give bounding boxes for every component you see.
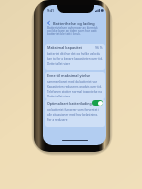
button[interactable]: Optimalisert batterilading: [45, 99, 105, 127]
staticText: og ikke bare av tiden som har gatt siden: [47, 29, 103, 32]
staticText: og batteriet fungerer som forventet i: [47, 108, 99, 111]
button[interactable]: Evne til maksimal ytelse: [45, 72, 105, 99]
staticText: Evne til maksimal ytelse: [47, 73, 91, 78]
staticText: Dette tallet viser den maksimale ladinge…: [47, 95, 71, 97]
staticText: batteriet ble tatt i bruk. Se hvordan: [47, 32, 82, 35]
button[interactable]: Optimalisert batterilading: [92, 100, 103, 106]
staticText: Kapasiteten reduseres gradvis over tid.: [47, 85, 102, 88]
staticText: kan ta for a bevare kapasiteten over tid…: [47, 57, 103, 60]
staticText: 9:41: [47, 8, 55, 13]
staticText: Dette tallet viser den maksimale ladinge…: [47, 62, 75, 65]
staticText: Maksimal kapasitet: [47, 45, 83, 50]
button[interactable]: Maksimal kapasitet: [45, 44, 105, 70]
staticText: Optimalisert batterilading: [47, 101, 92, 106]
staticText: 96 %: [95, 45, 103, 50]
staticText: For a redusere slitasjen pa batteriet: [47, 118, 78, 121]
staticText: batteriet ditt har det og hvilke valg du: [47, 52, 101, 55]
staticText: Batteriytelsen avhenger av kjemisk alder: [47, 26, 103, 29]
staticText: Batterihelse og lading: [53, 21, 95, 26]
staticText: sammenlignet med da batteriet var nytt.: [47, 80, 103, 83]
button[interactable]: Back: [45, 19, 51, 27]
staticText: alle situasjoner med hoy belastning.: [47, 113, 98, 116]
staticText: Telefonen stotter normal toppytelse na,: [47, 90, 103, 93]
